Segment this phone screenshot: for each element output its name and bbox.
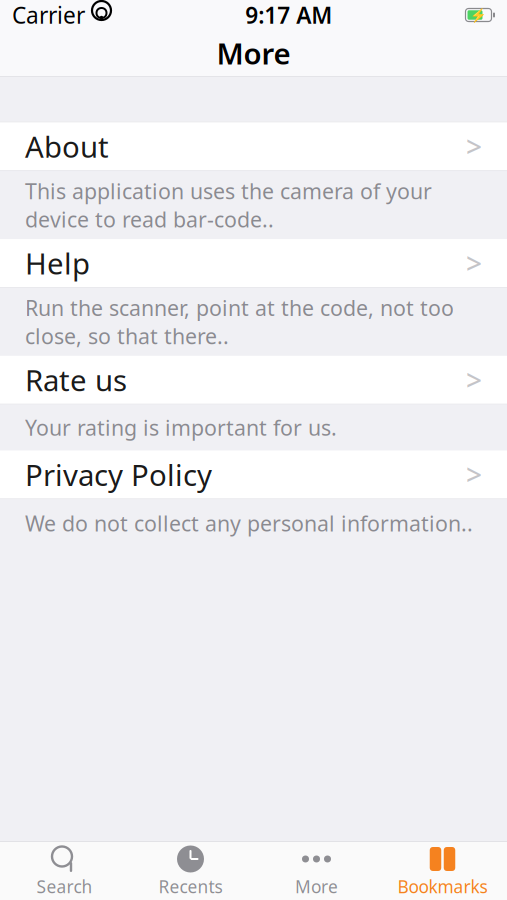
staticText: Run the scanner, point at the code, not …: [25, 293, 454, 350]
button[interactable]: Help: [0, 239, 507, 287]
staticText: >: [466, 361, 482, 398]
staticText: This application uses the camera of your…: [25, 177, 432, 233]
button[interactable]: About: [0, 122, 507, 170]
staticText: >: [466, 456, 482, 493]
staticText: Your rating is important for us.: [25, 413, 337, 442]
staticText: Rate us: [25, 360, 127, 399]
button[interactable]: Recents: [127, 842, 253, 900]
staticText: More: [216, 33, 290, 72]
staticText: >: [466, 128, 482, 165]
staticText: Privacy Policy: [25, 455, 212, 494]
staticText: Bookmarks: [397, 875, 487, 898]
staticText: 9:17 AM: [245, 0, 332, 30]
button[interactable]: Bookmarks: [379, 842, 505, 900]
button[interactable]: Search: [1, 842, 127, 900]
staticText: Help: [25, 244, 90, 283]
staticText: More: [295, 875, 338, 898]
staticText: About: [25, 127, 109, 166]
button[interactable]: Privacy Policy: [0, 450, 507, 498]
staticText: ⚡: [470, 7, 487, 23]
staticText: Search: [36, 875, 92, 898]
button[interactable]: Rate us: [0, 356, 507, 404]
button[interactable]: More: [253, 842, 379, 900]
staticText: We do not collect any personal informati…: [25, 509, 473, 537]
staticText: Carrier: [12, 0, 85, 30]
staticText: >: [466, 244, 482, 282]
staticText: Recents: [158, 875, 222, 898]
